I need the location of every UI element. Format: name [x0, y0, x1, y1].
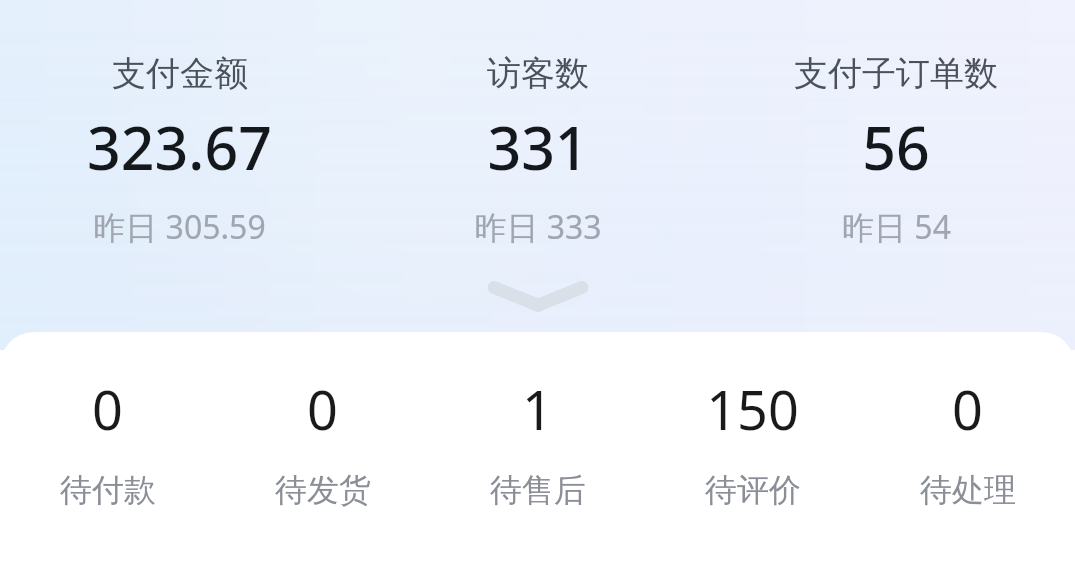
staticText: 0 [307, 372, 338, 446]
button[interactable]: 展开 [479, 272, 597, 318]
staticText: 0 [92, 372, 123, 446]
staticText: 访客数 [487, 52, 589, 95]
button[interactable]: 0 [215, 372, 430, 510]
staticText: 331 [487, 107, 589, 187]
staticText: 待付款 [60, 470, 156, 510]
staticText: 待处理 [920, 470, 1016, 510]
button[interactable]: 150 [645, 372, 860, 510]
staticText: 昨日 333 [474, 205, 602, 249]
button[interactable]: 支付金额 [0, 52, 359, 249]
staticText: 0 [952, 372, 983, 446]
staticText: 待发货 [275, 470, 371, 510]
staticText: 150 [706, 372, 799, 446]
staticText: 昨日 54 [842, 205, 951, 249]
staticText: 1 [522, 372, 553, 446]
staticText: 支付子订单数 [794, 52, 998, 95]
button[interactable]: 访客数 [359, 52, 717, 249]
staticText: 323.67 [87, 107, 272, 187]
button[interactable]: 支付子订单数 [717, 52, 1075, 249]
staticText: 昨日 305.59 [93, 205, 266, 249]
staticText: 支付金额 [112, 52, 248, 95]
button[interactable]: 0 [0, 372, 215, 510]
button[interactable]: 1 [430, 372, 645, 510]
staticText: 待评价 [705, 470, 801, 510]
button[interactable]: 0 [860, 372, 1075, 510]
staticText: 待售后 [490, 470, 586, 510]
staticText: 56 [862, 107, 930, 187]
